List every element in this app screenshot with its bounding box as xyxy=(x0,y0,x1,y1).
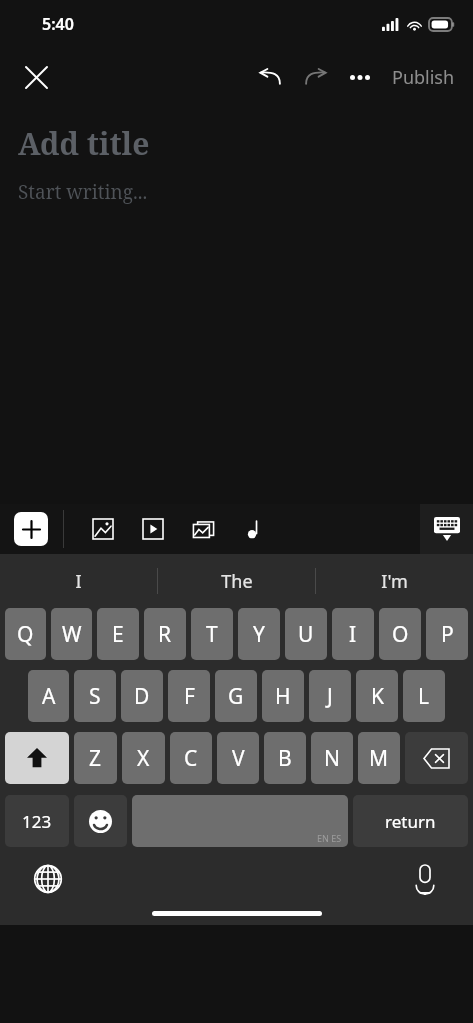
staticText: H xyxy=(275,682,291,711)
staticText: T xyxy=(206,620,218,649)
button[interactable]: I xyxy=(0,554,157,608)
button[interactable]: Close xyxy=(14,55,58,99)
staticText: I xyxy=(349,620,357,649)
button[interactable]: P xyxy=(426,608,468,660)
staticText: Z xyxy=(89,744,102,773)
button[interactable]: E xyxy=(97,608,139,660)
button[interactable]: B xyxy=(264,732,306,784)
button[interactable]: R xyxy=(144,608,186,660)
staticText: R xyxy=(158,620,172,649)
button[interactable]: O xyxy=(379,608,421,660)
staticText: E xyxy=(112,620,124,649)
staticText: F xyxy=(184,682,195,711)
staticText: A xyxy=(42,682,56,711)
staticText: I xyxy=(75,569,82,594)
button[interactable]: Voice input xyxy=(399,853,451,905)
button[interactable]: Insert audio xyxy=(228,506,278,552)
button[interactable]: N xyxy=(311,732,353,784)
staticText: 5:40 xyxy=(42,13,74,35)
button[interactable]: I'm xyxy=(316,554,473,608)
button[interactable]: return xyxy=(353,795,468,847)
button[interactable]: Change keyboard xyxy=(22,853,74,905)
button[interactable]: M xyxy=(358,732,400,784)
button[interactable]: Add block xyxy=(14,512,48,546)
button[interactable]: Undo xyxy=(248,55,292,99)
button[interactable]: More options xyxy=(340,57,380,97)
staticText: 123 xyxy=(22,810,52,833)
button[interactable]: Q xyxy=(5,608,46,660)
button[interactable]: A xyxy=(28,670,69,722)
button[interactable]: H xyxy=(262,670,304,722)
button[interactable]: The xyxy=(158,554,315,608)
staticText: B xyxy=(278,744,292,773)
button[interactable]: I xyxy=(332,608,374,660)
button[interactable]: Insert video xyxy=(128,506,178,552)
button[interactable]: Start writing... xyxy=(18,179,148,205)
staticText: S xyxy=(89,682,101,711)
button[interactable]: Redo xyxy=(294,55,338,99)
button[interactable]: Z xyxy=(74,732,117,784)
button[interactable]: J xyxy=(309,670,351,722)
button[interactable]: F xyxy=(168,670,210,722)
staticText: W xyxy=(62,620,82,649)
staticText: O xyxy=(392,620,409,649)
button[interactable]: Hide keyboard xyxy=(420,504,473,554)
staticText: L xyxy=(418,682,430,711)
staticText: J xyxy=(327,682,333,711)
button[interactable]: Publish xyxy=(384,57,463,98)
staticText: K xyxy=(371,682,384,711)
staticText: V xyxy=(232,744,245,773)
staticText: I'm xyxy=(381,569,408,594)
staticText: G xyxy=(228,682,244,711)
staticText: D xyxy=(134,682,150,711)
button[interactable]: Y xyxy=(238,608,280,660)
button[interactable]: G xyxy=(215,670,257,722)
button[interactable]: D xyxy=(121,670,163,722)
staticText: U xyxy=(298,620,314,649)
button[interactable]: X xyxy=(122,732,165,784)
staticText: Y xyxy=(253,620,265,649)
button[interactable]: L xyxy=(403,670,445,722)
staticText: X xyxy=(137,744,150,773)
button[interactable]: V xyxy=(217,732,259,784)
button[interactable]: U xyxy=(285,608,327,660)
button[interactable]: S xyxy=(74,670,116,722)
button[interactable]: 123 xyxy=(5,795,69,847)
button[interactable]: Insert gallery xyxy=(178,506,228,552)
staticText: N xyxy=(324,744,340,773)
button[interactable]: Backspace xyxy=(405,732,468,784)
staticText: C xyxy=(184,744,198,773)
button[interactable]: Insert image xyxy=(78,506,128,552)
button[interactable]: C xyxy=(170,732,212,784)
staticText: Publish xyxy=(392,65,455,90)
staticText: return xyxy=(385,810,436,833)
staticText: EN ES xyxy=(317,832,342,844)
button[interactable]: Space xyxy=(132,795,348,847)
staticText: The xyxy=(221,569,253,594)
staticText: P xyxy=(441,620,454,649)
staticText: M xyxy=(369,744,389,773)
button[interactable]: W xyxy=(51,608,92,660)
staticText: Q xyxy=(17,620,34,649)
button[interactable]: Shift xyxy=(5,732,69,784)
button[interactable]: Add title xyxy=(18,123,150,164)
button[interactable]: K xyxy=(356,670,398,722)
button[interactable]: T xyxy=(191,608,233,660)
button[interactable]: Emoji xyxy=(74,795,127,847)
